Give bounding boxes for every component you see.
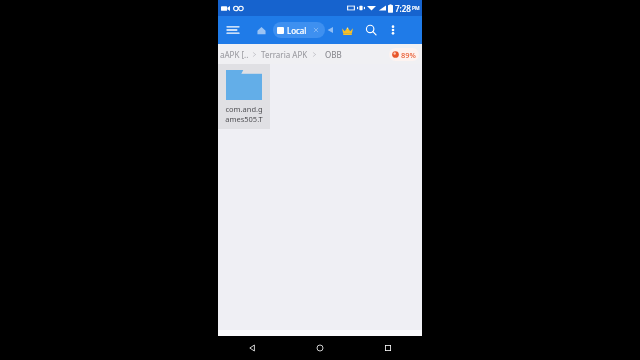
button[interactable]: 89% — [389, 48, 419, 61]
staticText: Local — [287, 25, 307, 36]
button[interactable]: Home — [253, 22, 269, 38]
button[interactable]: Back — [218, 336, 286, 360]
staticText: 7:28 — [395, 3, 411, 14]
staticText: PM — [412, 5, 420, 12]
button[interactable]: Terraria APK — [261, 49, 308, 60]
staticText: 89% — [401, 50, 416, 60]
staticText: aAPK [.. — [220, 49, 249, 60]
staticText: Terraria APK — [261, 49, 308, 60]
button[interactable]: Recent apps — [354, 336, 422, 360]
button[interactable]: Open navigation menu — [223, 20, 243, 40]
staticText: ames505.T — [225, 114, 263, 124]
button[interactable]: OBB — [325, 49, 342, 60]
button[interactable]: More options — [383, 20, 403, 40]
button[interactable]: Local — [273, 22, 325, 38]
staticText: OBB — [325, 49, 342, 60]
button[interactable]: Search — [361, 20, 381, 40]
button[interactable]: Premium — [338, 21, 356, 39]
staticText: com.and.g — [225, 104, 263, 114]
button[interactable]: Home — [286, 336, 354, 360]
button[interactable]: com.and.g — [218, 64, 270, 129]
